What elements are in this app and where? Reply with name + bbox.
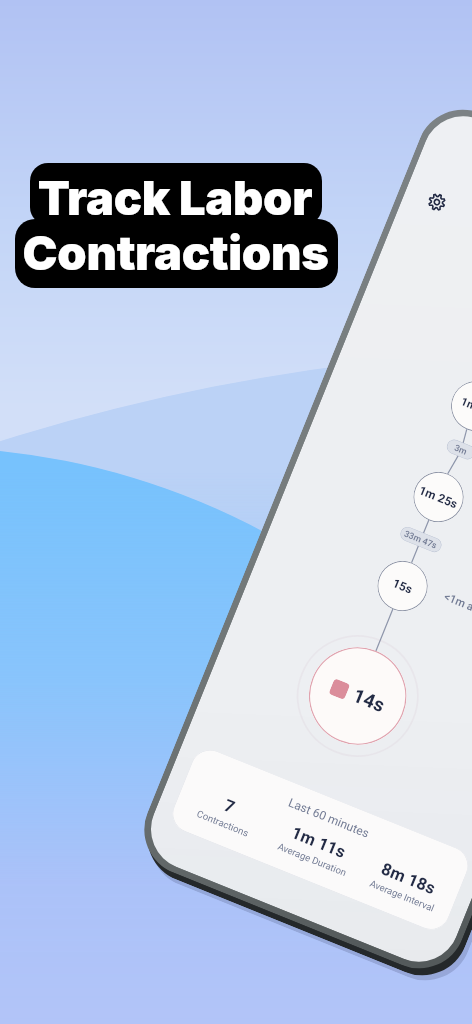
staticText: 3m <box>453 443 468 457</box>
button[interactable]: 14s <box>294 632 421 760</box>
staticText: <1m ago <box>442 590 472 618</box>
staticText: Track Labor <box>29 169 321 226</box>
staticText: 1m 11s <box>289 823 349 863</box>
staticText: 1m 25s <box>417 483 460 512</box>
button[interactable]: 15s <box>370 553 435 619</box>
staticText: Average Duration <box>276 841 348 879</box>
button[interactable]: 1m 3s <box>443 373 472 439</box>
staticText: Average Interval <box>368 878 436 914</box>
staticText: 1m 3s <box>459 395 472 418</box>
staticText: Last 60 minutes <box>286 795 372 841</box>
button[interactable]: Settings <box>417 182 456 221</box>
button[interactable]: 1m 25s <box>406 464 471 530</box>
staticText: 33m 47s <box>402 528 439 551</box>
staticText: 15s <box>390 576 414 597</box>
staticText: 14s <box>350 684 388 717</box>
staticText: Contractions <box>14 224 337 281</box>
staticText: 8m 18s <box>378 859 438 899</box>
staticText: 7 <box>221 796 238 818</box>
staticText: Contractions <box>195 808 251 839</box>
